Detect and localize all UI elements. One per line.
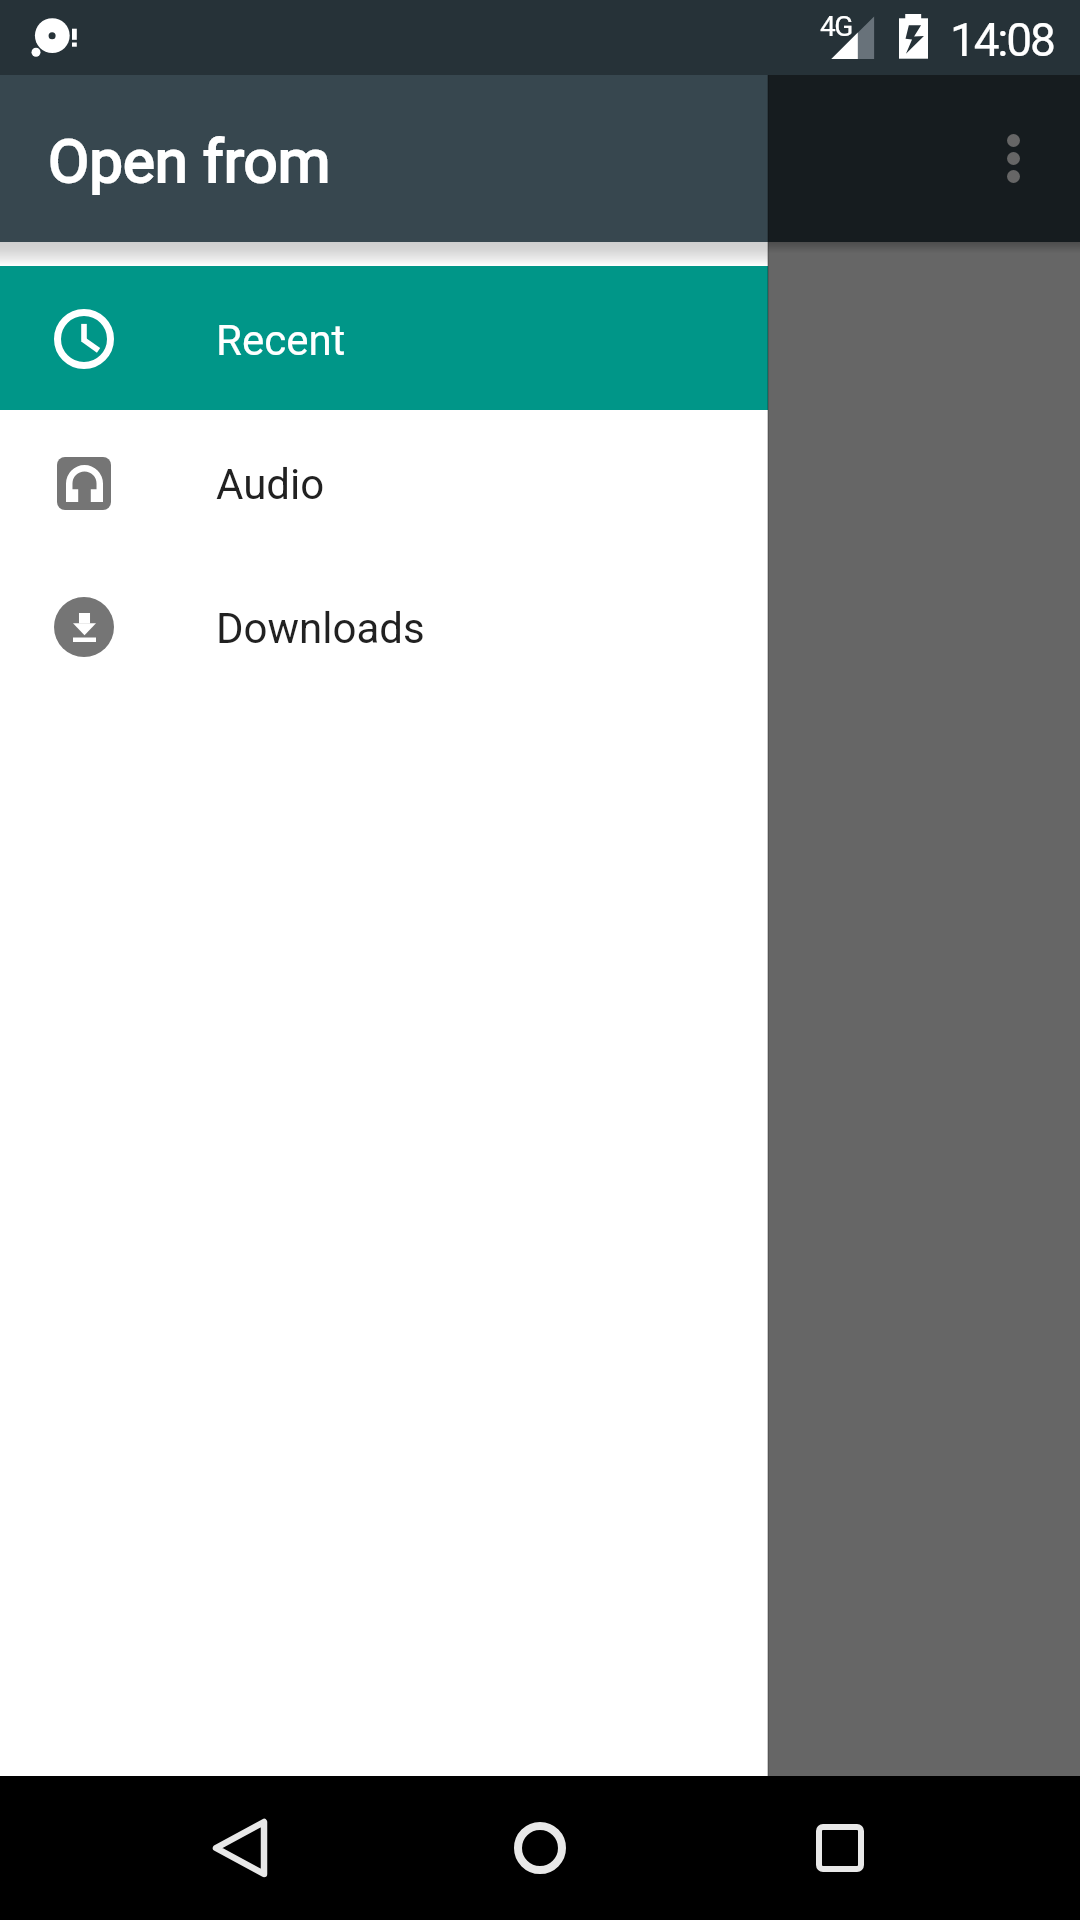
button[interactable]: Recent bbox=[0, 266, 768, 410]
button[interactable]: Back bbox=[168, 1776, 312, 1920]
staticText: Downloads bbox=[216, 604, 425, 653]
button[interactable]: Audio bbox=[0, 410, 768, 554]
staticText: Recent bbox=[216, 316, 346, 365]
staticText: 14:08 bbox=[950, 13, 1054, 67]
button[interactable]: Home bbox=[468, 1776, 612, 1920]
staticText: Audio bbox=[216, 460, 325, 509]
button[interactable]: Recent apps bbox=[768, 1776, 912, 1920]
button[interactable]: Close navigation drawer bbox=[0, 75, 1080, 1776]
button[interactable]: More options bbox=[946, 75, 1080, 242]
button[interactable]: Downloads bbox=[0, 554, 768, 698]
staticText: Open from bbox=[48, 126, 331, 196]
staticText: 4G bbox=[820, 10, 852, 43]
